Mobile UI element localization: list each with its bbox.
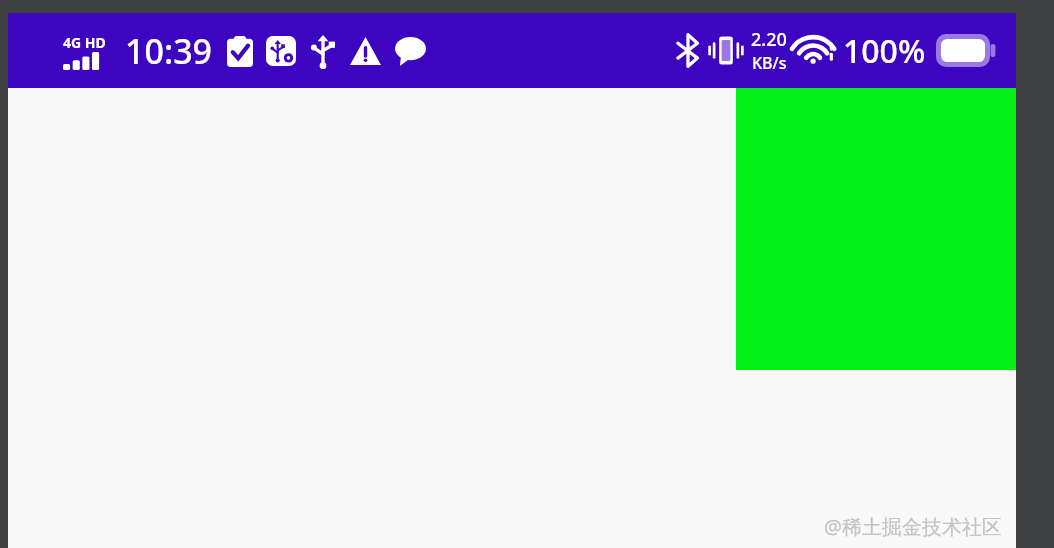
staticText: 2.20 [751,27,787,52]
staticText: 10:39 [125,28,213,74]
staticText: 100% [843,29,926,73]
staticText: KB/s [752,52,787,74]
staticText: @稀土掘金技术社区 [824,513,1002,540]
staticText: 4G HD [63,33,106,52]
